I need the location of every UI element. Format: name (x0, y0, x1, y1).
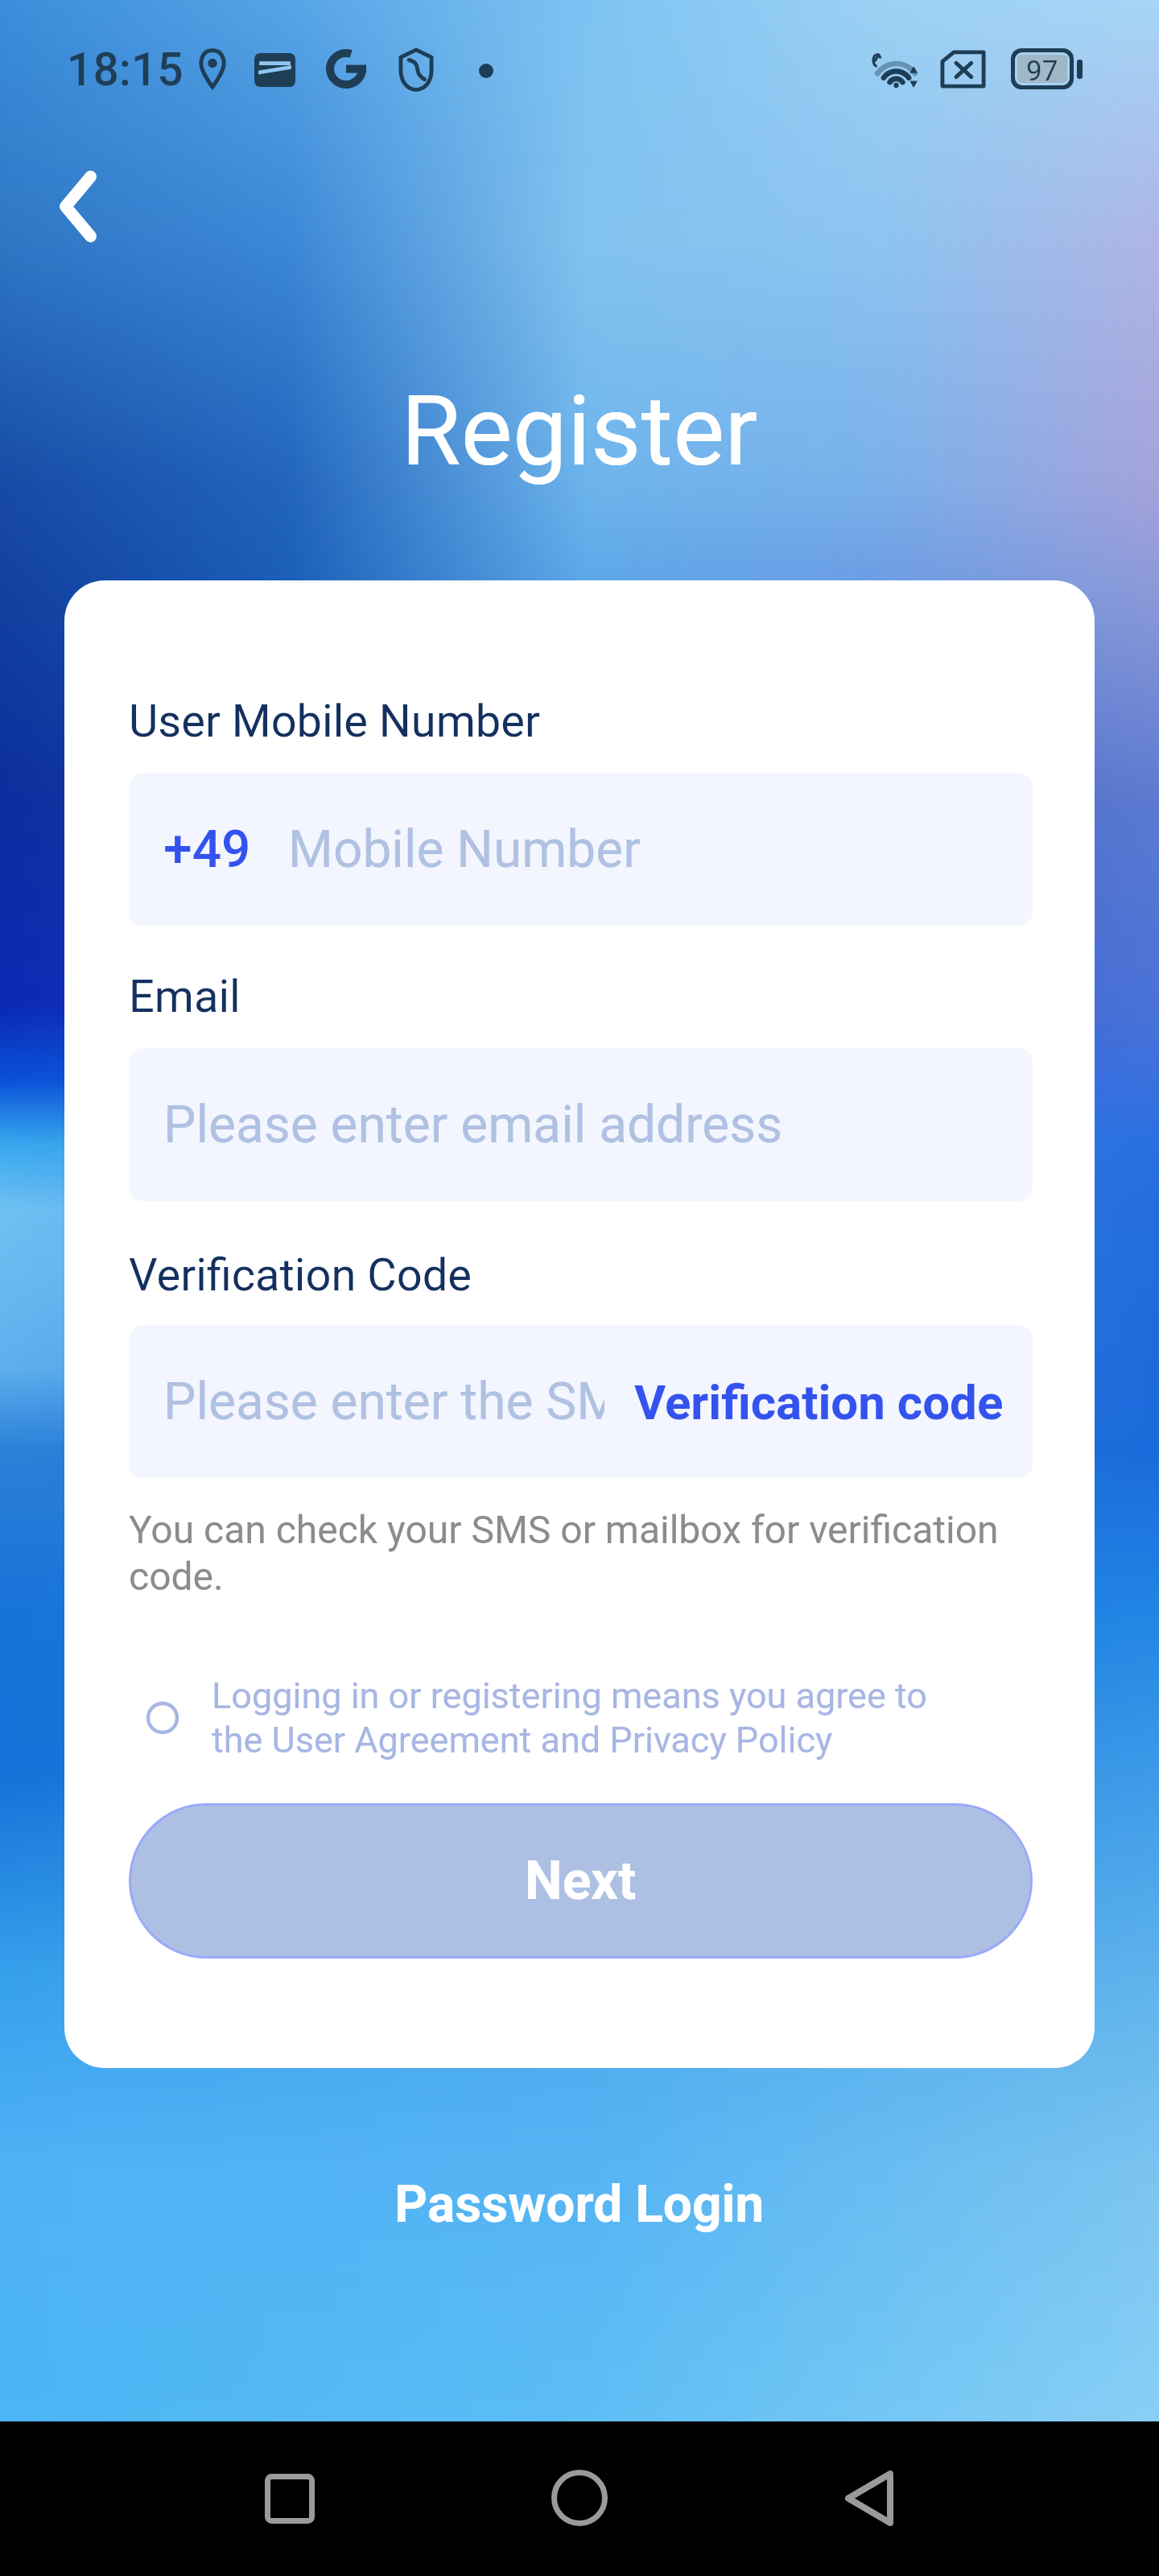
button[interactable]: Please enter the SMS (129, 1325, 1033, 1478)
staticText: Email (129, 970, 241, 1023)
button[interactable]: Verification code (634, 1374, 1004, 1430)
staticText: Next (525, 1850, 637, 1912)
staticText: Register (401, 374, 758, 489)
staticText: Verification code (634, 1374, 1004, 1430)
staticText: 97 (1026, 55, 1058, 83)
staticText: Mobile Number (288, 819, 641, 880)
button[interactable]: Logging in or registering means you agre… (129, 1674, 1033, 1761)
staticText: 18:15 (67, 43, 184, 97)
button[interactable]: Home (519, 2438, 640, 2558)
staticText: Logging in or registering means you agre… (212, 1674, 984, 1761)
staticText: Verification Code (129, 1249, 472, 1302)
staticText: Please enter the SMS (163, 1372, 604, 1432)
staticText: Please enter email address (163, 1095, 783, 1155)
staticText: You can check your SMS or mailbox for ve… (129, 1507, 1033, 1600)
button[interactable]: Next (131, 1806, 1030, 1956)
button[interactable]: +49 (129, 773, 1033, 926)
staticText: User Mobile Number (129, 695, 540, 748)
staticText: Password Login (394, 2174, 765, 2235)
button[interactable]: Please enter email address (129, 1048, 1033, 1201)
button[interactable]: Password Login (370, 2163, 789, 2246)
staticText: +49 (163, 819, 251, 880)
button[interactable]: Back (27, 155, 129, 257)
button[interactable]: Back (809, 2438, 930, 2558)
button[interactable]: Recent apps (229, 2438, 350, 2559)
